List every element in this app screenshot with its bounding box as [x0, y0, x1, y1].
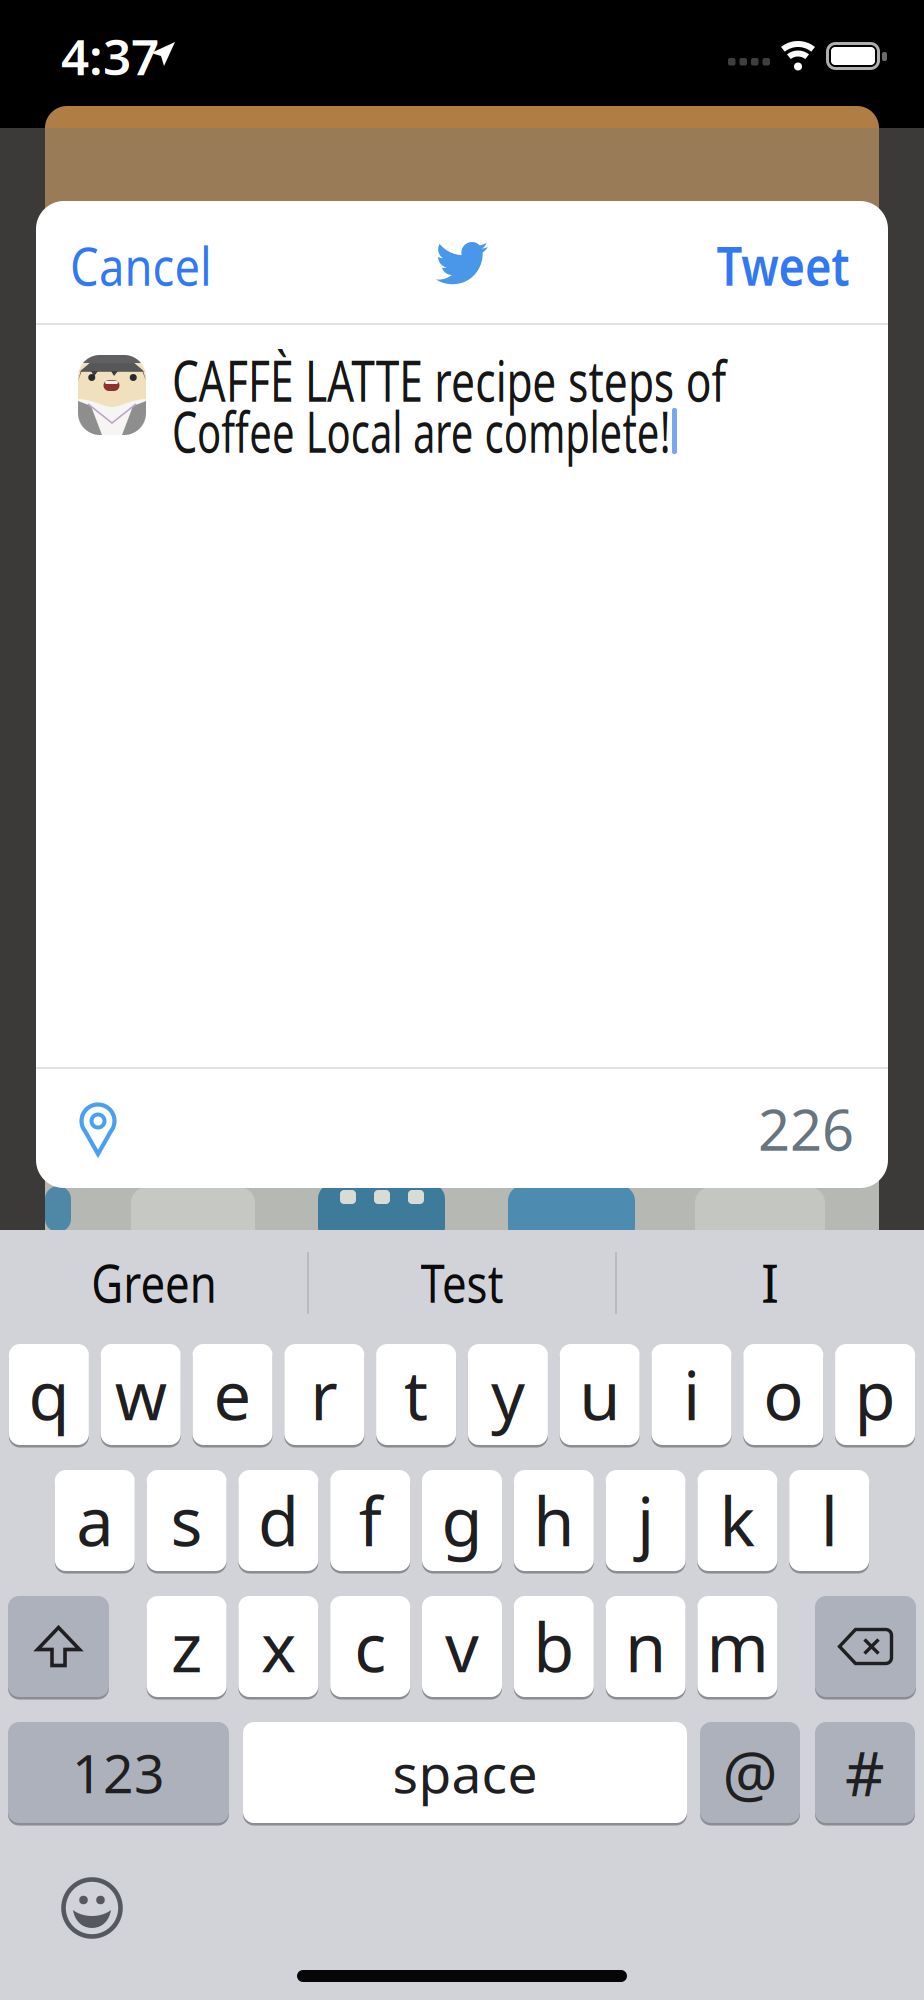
staticText: w [115, 1350, 167, 1439]
staticText: CAFFÈ LATTE recipe steps of [172, 343, 901, 417]
staticText: 123 [72, 1737, 165, 1808]
button[interactable]: w [101, 1344, 181, 1445]
button[interactable]: x [238, 1596, 318, 1697]
button[interactable]: 123 [8, 1722, 229, 1823]
button[interactable]: space [243, 1722, 687, 1823]
staticText: j [637, 1476, 654, 1565]
staticText: Green [77, 1247, 230, 1317]
staticText: 226 [758, 1092, 854, 1166]
staticText: 4:37 [61, 23, 159, 89]
button[interactable]: I [616, 1242, 924, 1322]
button[interactable]: t [376, 1344, 456, 1445]
button[interactable]: Tweet [640, 240, 850, 290]
button[interactable]: b [514, 1596, 594, 1697]
button[interactable]: h [514, 1470, 594, 1571]
button[interactable]: Shift [8, 1596, 109, 1697]
staticText: e [213, 1350, 251, 1439]
staticText: q [28, 1350, 69, 1439]
button[interactable]: v [422, 1596, 502, 1697]
button[interactable]: Emoji [61, 1877, 123, 1939]
staticText: Cancel [70, 230, 237, 300]
staticText: k [719, 1476, 755, 1565]
button[interactable]: e [192, 1344, 272, 1445]
staticText: I [761, 1247, 779, 1317]
button[interactable]: o [743, 1344, 823, 1445]
staticText: c [354, 1602, 386, 1691]
button[interactable]: Cancel [70, 240, 290, 290]
button[interactable]: n [606, 1596, 686, 1697]
button[interactable]: s [147, 1470, 227, 1571]
staticText: y [491, 1350, 525, 1439]
button[interactable]: m [697, 1596, 777, 1697]
staticText: x [261, 1602, 296, 1691]
staticText: d [258, 1476, 299, 1565]
staticText: t [404, 1350, 428, 1439]
staticText: space [392, 1737, 537, 1808]
button[interactable]: d [238, 1470, 318, 1571]
staticText: g [441, 1476, 482, 1565]
button[interactable]: q [9, 1344, 89, 1445]
staticText: o [763, 1350, 803, 1439]
button[interactable]: Delete [815, 1596, 916, 1697]
button[interactable]: i [651, 1344, 731, 1445]
staticText: Tweet [693, 230, 850, 300]
button[interactable]: Test [308, 1242, 616, 1322]
staticText: h [533, 1476, 574, 1565]
button[interactable]: # [815, 1722, 915, 1823]
button[interactable]: @ [700, 1722, 800, 1823]
staticText: Coffee Local are complete! [172, 394, 869, 468]
button[interactable]: f [330, 1470, 410, 1571]
staticText: z [171, 1602, 202, 1691]
button[interactable]: Add location [76, 1100, 120, 1158]
staticText: n [625, 1602, 666, 1691]
staticText: @ [722, 1732, 777, 1813]
staticText: a [76, 1476, 113, 1565]
button[interactable]: c [330, 1596, 410, 1697]
button[interactable]: a [55, 1470, 135, 1571]
staticText: s [171, 1476, 203, 1565]
staticText: u [579, 1350, 620, 1439]
staticText: v [445, 1602, 479, 1691]
button[interactable]: j [606, 1470, 686, 1571]
staticText: i [683, 1350, 700, 1439]
staticText: r [310, 1350, 338, 1439]
staticText: l [821, 1476, 838, 1565]
staticText: m [706, 1602, 768, 1691]
button[interactable]: y [468, 1344, 548, 1445]
button[interactable]: p [835, 1344, 915, 1445]
staticText: b [533, 1602, 574, 1691]
button[interactable]: g [422, 1470, 502, 1571]
staticText: p [855, 1350, 896, 1439]
staticText: Test [411, 1247, 512, 1317]
button[interactable]: u [560, 1344, 640, 1445]
button[interactable]: k [697, 1470, 777, 1571]
button[interactable]: Green [0, 1242, 308, 1322]
button[interactable]: l [789, 1470, 869, 1571]
button[interactable]: z [147, 1596, 227, 1697]
button[interactable]: r [284, 1344, 364, 1445]
staticText: f [359, 1476, 382, 1565]
staticText: # [845, 1732, 885, 1813]
